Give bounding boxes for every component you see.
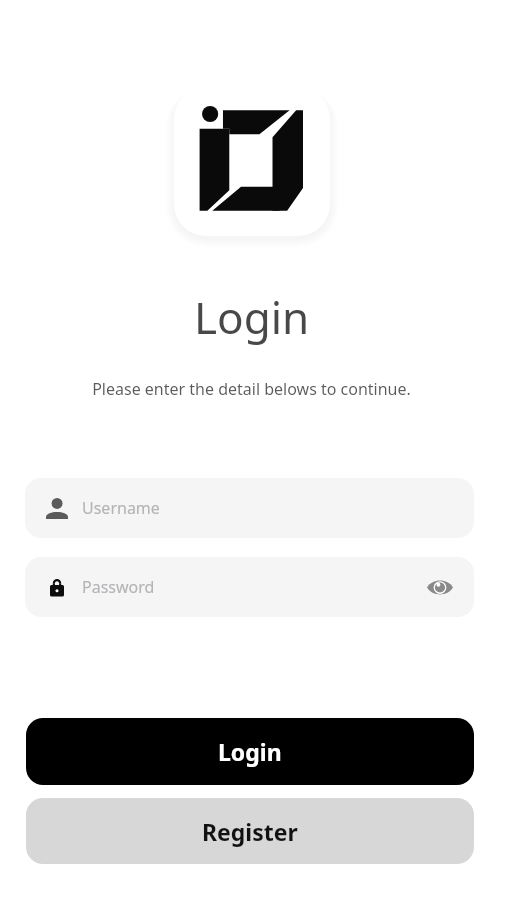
- staticText: Register: [202, 816, 298, 847]
- staticText: Login: [218, 736, 282, 767]
- button[interactable]: Password: [25, 557, 474, 617]
- staticText: Login: [194, 287, 310, 347]
- staticText: Username: [82, 497, 160, 519]
- staticText: Please enter the detail belows to contin…: [92, 378, 411, 400]
- button[interactable]: Username: [25, 478, 474, 538]
- button[interactable]: Register: [26, 798, 474, 864]
- staticText: Password: [82, 576, 155, 598]
- button[interactable]: Login: [26, 718, 474, 785]
- button[interactable]: Show password: [426, 573, 454, 601]
